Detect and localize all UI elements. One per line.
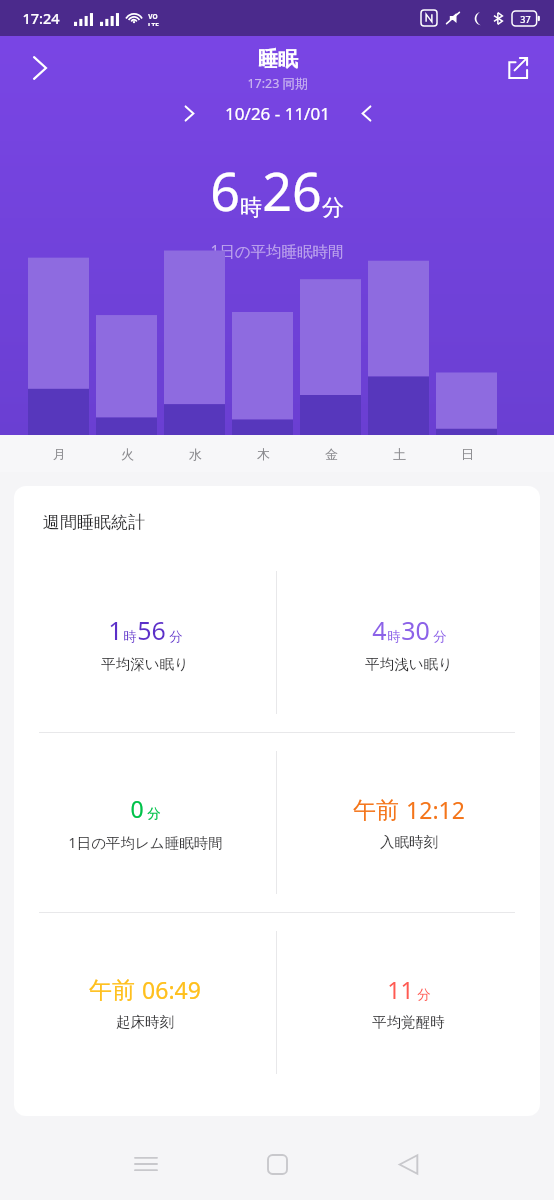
button[interactable]: 0 bbox=[14, 733, 276, 912]
staticText: 水 bbox=[189, 446, 202, 462]
staticText: 1日の平均レム睡眠時間 bbox=[68, 832, 223, 852]
staticText: 6 bbox=[210, 155, 240, 226]
staticText: 17:24 bbox=[22, 8, 60, 28]
button[interactable]: Previous week bbox=[171, 98, 207, 128]
staticText: 分 bbox=[147, 805, 161, 822]
button[interactable]: Next week bbox=[348, 98, 384, 128]
button[interactable]: 11 bbox=[277, 913, 540, 1092]
button[interactable]: 1 bbox=[14, 553, 276, 732]
staticText: 0 bbox=[130, 793, 144, 824]
button[interactable]: Recents bbox=[118, 1136, 174, 1192]
button[interactable]: Back bbox=[14, 42, 66, 94]
button[interactable]: 4 bbox=[277, 553, 540, 732]
staticText: 睡眠 bbox=[258, 47, 298, 72]
staticText: 56 bbox=[137, 613, 166, 647]
staticText: 分 bbox=[169, 628, 183, 645]
staticText: 26 bbox=[262, 155, 322, 226]
staticText: 30 bbox=[401, 613, 430, 647]
staticText: 起床時刻 bbox=[116, 1013, 174, 1031]
staticText: VO bbox=[148, 12, 158, 21]
staticText: 入眠時刻 bbox=[380, 833, 438, 851]
staticText: 37 bbox=[520, 13, 531, 25]
staticText: 分 bbox=[322, 194, 344, 222]
staticText: 土 bbox=[393, 446, 406, 462]
staticText: 午前 bbox=[353, 796, 399, 825]
button[interactable]: Home bbox=[249, 1136, 305, 1192]
staticText: 時 bbox=[387, 628, 401, 645]
staticText: 分 bbox=[417, 986, 431, 1003]
staticText: 4 bbox=[372, 613, 387, 647]
staticText: 平均浅い眠り bbox=[365, 655, 453, 673]
staticText: 午前 bbox=[89, 976, 135, 1005]
staticText: 06:49 bbox=[142, 974, 201, 1005]
button[interactable]: 午前 bbox=[14, 913, 276, 1092]
staticText: 12:12 bbox=[406, 794, 465, 825]
button[interactable]: Back bbox=[380, 1136, 436, 1192]
staticText: 時 bbox=[123, 628, 137, 645]
button[interactable]: Share bbox=[492, 43, 542, 93]
staticText: 平均深い眠り bbox=[101, 655, 189, 673]
staticText: 平均覚醒時 bbox=[372, 1013, 445, 1031]
staticText: 10/26 - 11/01 bbox=[225, 102, 330, 125]
staticText: 1日の平均睡眠時間 bbox=[210, 240, 344, 261]
staticText: 17:23 同期 bbox=[247, 75, 308, 92]
staticText: 分 bbox=[433, 628, 447, 645]
staticText: 木 bbox=[257, 446, 270, 462]
staticText: 月 bbox=[53, 446, 66, 462]
button[interactable]: 午前 bbox=[277, 733, 540, 912]
staticText: LTE bbox=[148, 21, 159, 26]
staticText: 1 bbox=[108, 613, 123, 647]
staticText: 週間睡眠統計 bbox=[43, 512, 145, 533]
staticText: 時 bbox=[240, 194, 262, 222]
staticText: 日 bbox=[461, 446, 474, 462]
staticText: 火 bbox=[121, 446, 134, 462]
staticText: 11 bbox=[387, 974, 414, 1005]
staticText: 金 bbox=[325, 446, 338, 462]
